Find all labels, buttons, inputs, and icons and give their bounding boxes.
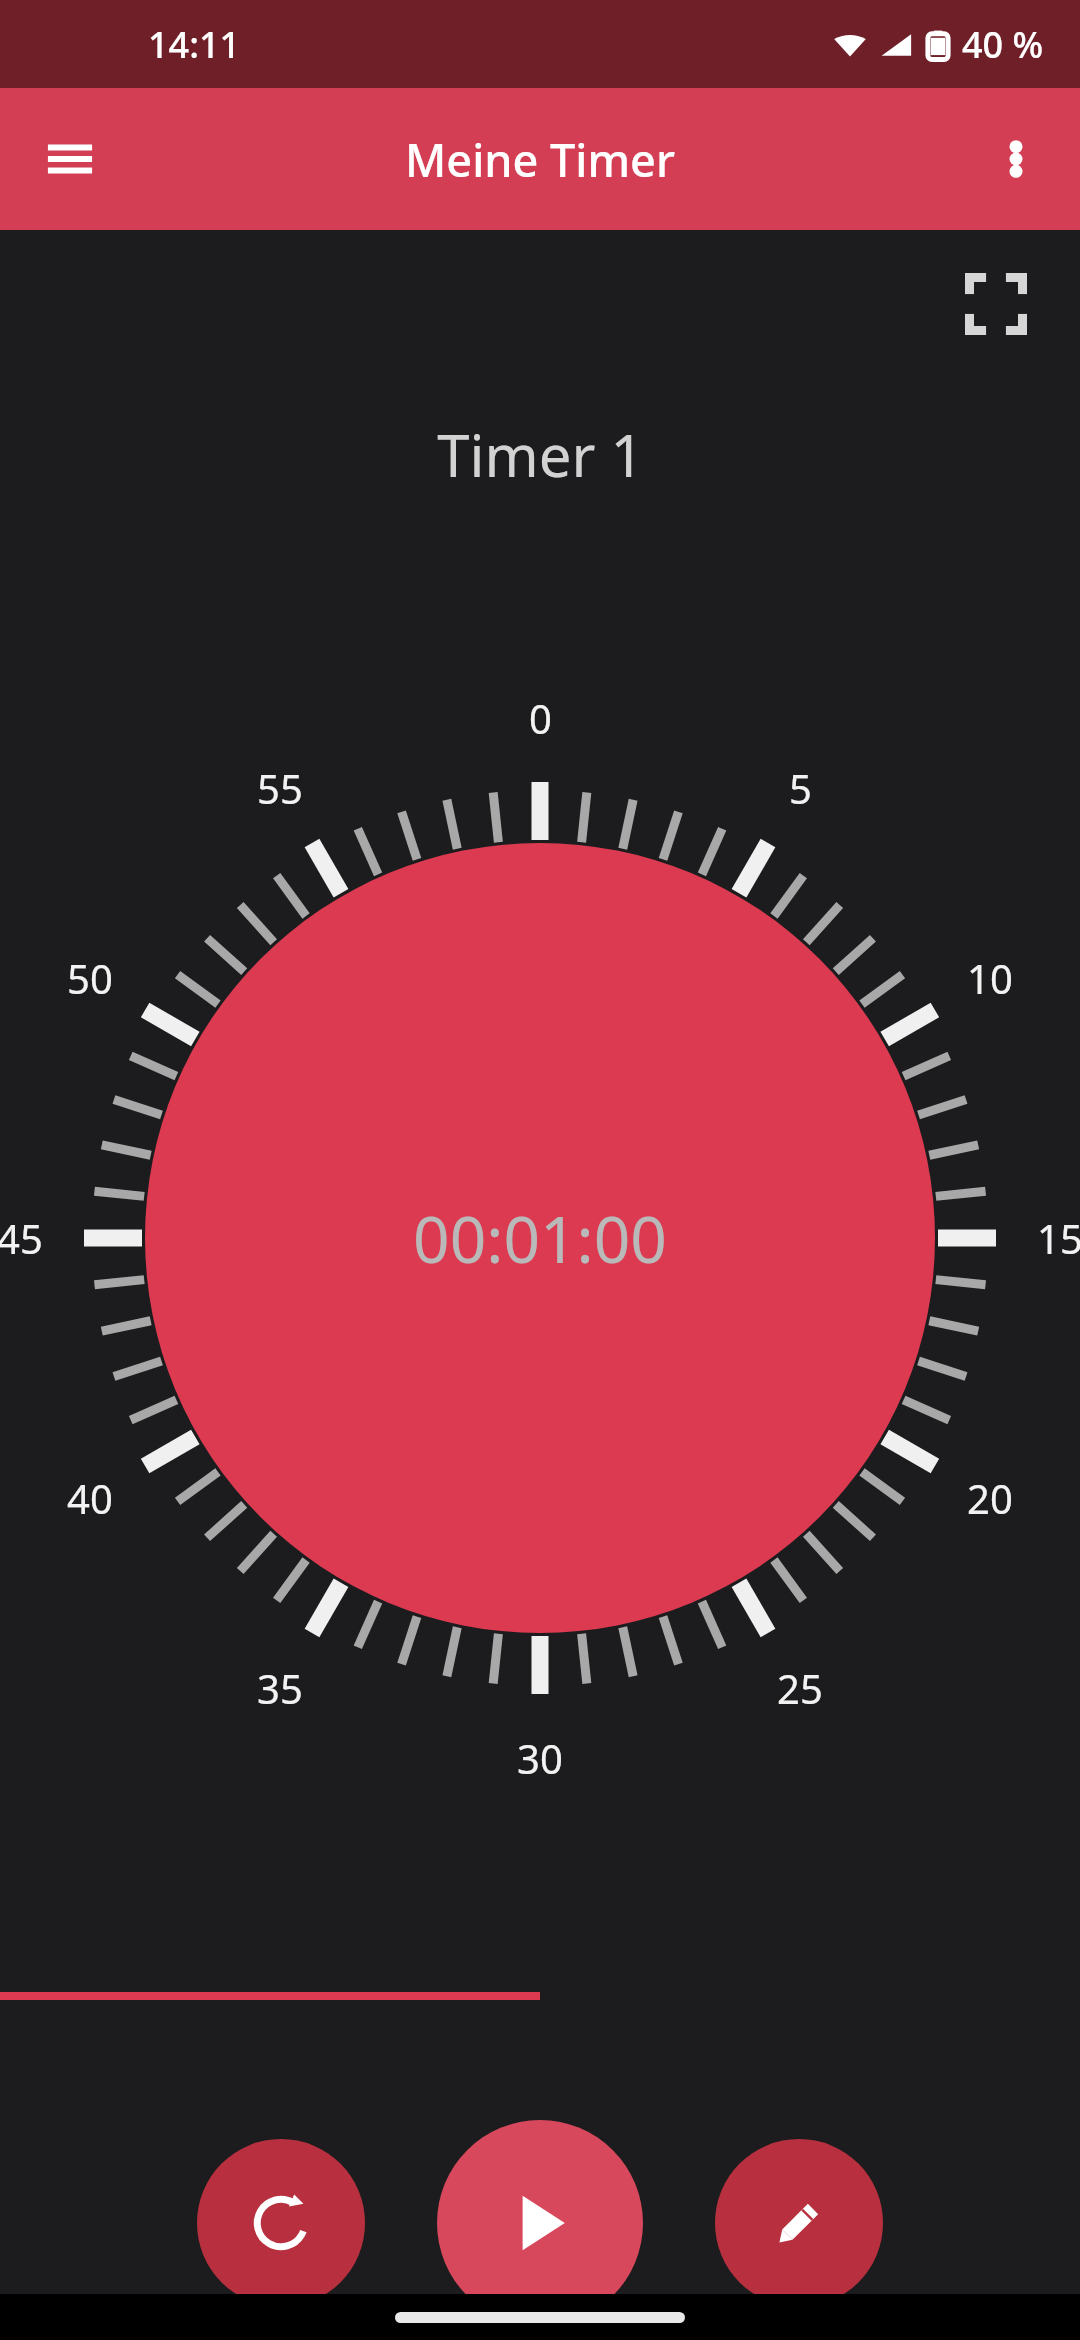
staticText: Meine Timer [405, 129, 675, 190]
staticText: 0 [529, 691, 552, 745]
button[interactable]: Start [437, 2120, 643, 2326]
staticText: 5 [789, 761, 812, 815]
button[interactable]: Edit [715, 2139, 883, 2307]
staticText: 15 [1037, 1211, 1080, 1265]
staticText: 00:01:00 [413, 1195, 667, 1282]
staticText: 50 [67, 951, 113, 1005]
staticText: 30 [517, 1731, 563, 1785]
staticText: 25 [777, 1661, 823, 1715]
staticText: Timer 1 [437, 415, 644, 494]
staticText: 14:11 [148, 20, 241, 69]
button[interactable]: Timer dial [40, 738, 1040, 1738]
button[interactable]: More options [974, 117, 1058, 201]
staticText: 55 [257, 761, 303, 815]
button[interactable]: Menu [28, 117, 112, 201]
button[interactable]: Fullscreen [948, 256, 1044, 352]
staticText: 40 % [962, 20, 1044, 69]
staticText: 20 [967, 1471, 1013, 1525]
staticText: 40 [67, 1471, 113, 1525]
button[interactable]: Reset [197, 2139, 365, 2307]
staticText: 45 [0, 1211, 43, 1265]
staticText: 35 [257, 1661, 303, 1715]
staticText: 10 [967, 951, 1013, 1005]
